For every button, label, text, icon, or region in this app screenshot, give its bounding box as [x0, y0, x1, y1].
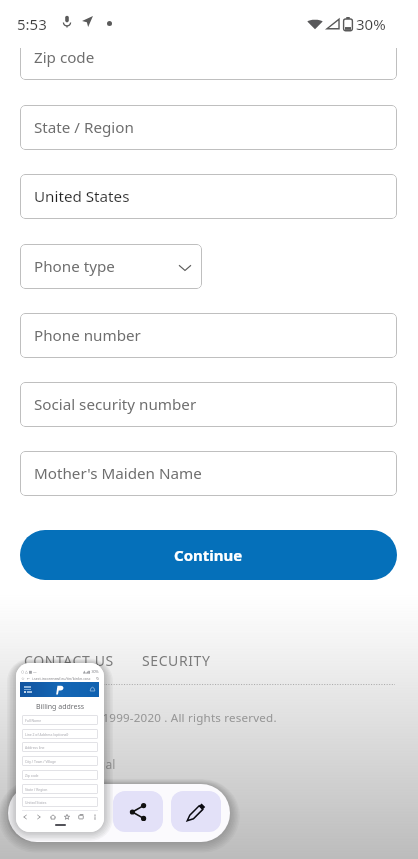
staticText: ▲◢▮ 30%	[83, 669, 99, 674]
button[interactable]: Share	[113, 791, 163, 832]
button[interactable]: Phone number	[20, 313, 397, 358]
button[interactable]: State / Region	[20, 105, 397, 150]
staticText: United States	[25, 800, 47, 805]
staticText: Line 2 of Address (optional)	[25, 732, 69, 737]
button[interactable]: SECURITY	[142, 651, 211, 670]
staticText: Zip code	[25, 773, 39, 778]
button[interactable]: Social security number	[20, 382, 397, 427]
staticText: ☆	[21, 676, 25, 681]
staticText: City / Town / Village	[25, 759, 56, 764]
staticText: Full Name	[25, 718, 42, 723]
staticText: State / Region	[25, 787, 48, 792]
staticText: 30%	[356, 14, 386, 34]
staticText: ← i-sect.incorenewf.eu/tin/binkn.cosc	[27, 676, 91, 681]
staticText: State / Region	[34, 117, 134, 138]
staticText: CONTACT US	[24, 651, 114, 670]
button[interactable]: Continue	[20, 530, 397, 580]
staticText: United States	[34, 186, 130, 207]
button[interactable]: United States	[20, 174, 397, 219]
staticText: SECURITY	[142, 651, 211, 670]
staticText: 5:53	[17, 14, 47, 34]
staticText: Phone type	[34, 256, 115, 277]
button[interactable]: Zip code	[20, 48, 397, 80]
staticText: Address line	[25, 745, 45, 750]
button[interactable]: Edit	[171, 791, 221, 832]
staticText: ↻	[96, 676, 100, 681]
staticText: Continue	[174, 545, 243, 565]
staticText: ○ △ ■ —	[21, 669, 37, 674]
button[interactable]: CONTACT US	[24, 651, 114, 670]
staticText: Social security number	[34, 394, 197, 415]
staticText: Billing address	[36, 702, 85, 712]
staticText: Copyright © 1999-2020 . All rights reser…	[31, 710, 277, 726]
button[interactable]: Mother's Maiden Name	[20, 451, 397, 496]
staticText: Zip code	[34, 48, 95, 68]
button[interactable]: Screenshot preview	[16, 663, 104, 832]
button[interactable]: Phone type	[20, 244, 202, 289]
staticText: Phone number	[34, 325, 141, 346]
staticText: Mother's Maiden Name	[34, 463, 202, 484]
staticText: Privacy Legal	[33, 756, 116, 772]
